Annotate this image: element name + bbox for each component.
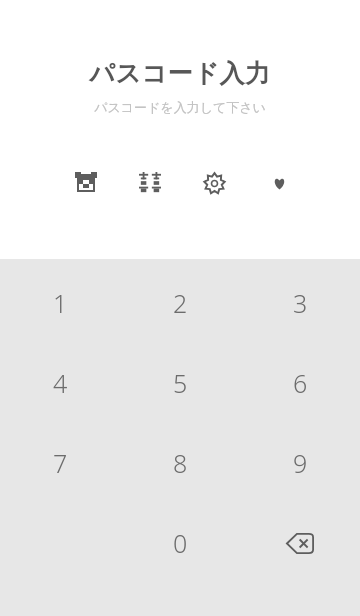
staticText: 5 (173, 366, 188, 400)
staticText: 8 (173, 446, 188, 480)
other: Panda (75, 172, 97, 194)
other: Double happiness (139, 172, 161, 194)
button[interactable]: 2 (120, 263, 240, 343)
button[interactable]: 0 (120, 503, 240, 583)
button[interactable]: 1 (0, 263, 120, 343)
staticText: 3 (293, 286, 308, 320)
button[interactable]: Backspace (240, 503, 360, 583)
staticText: 1 (53, 286, 68, 320)
button[interactable]: 8 (120, 423, 240, 503)
button[interactable]: 3 (240, 263, 360, 343)
staticText: 4 (53, 366, 68, 400)
staticText: 2 (173, 286, 188, 320)
other: Heart (273, 177, 286, 190)
staticText: 6 (293, 366, 308, 400)
button[interactable]: 4 (0, 343, 120, 423)
staticText: パスコードを入力して下さい (94, 99, 266, 115)
staticText: 0 (173, 526, 188, 560)
other: Cloud (203, 172, 226, 195)
staticText: 7 (53, 446, 68, 480)
staticText: パスコード入力 (89, 58, 271, 89)
button[interactable]: 9 (240, 423, 360, 503)
staticText: 9 (293, 446, 308, 480)
button[interactable]: 5 (120, 343, 240, 423)
button[interactable]: 6 (240, 343, 360, 423)
button[interactable]: 7 (0, 423, 120, 503)
